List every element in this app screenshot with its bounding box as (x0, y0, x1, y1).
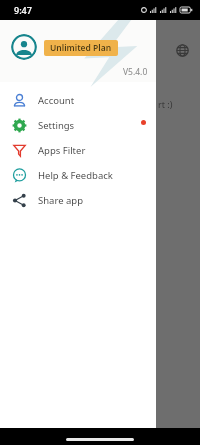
staticText: V5.4.0 (123, 66, 148, 78)
staticText: Unlimited Plan (50, 42, 112, 54)
button[interactable]: Settings (0, 113, 156, 138)
staticText: Apps Filter (38, 144, 86, 157)
staticText: 9:47 (14, 4, 32, 16)
button[interactable]: Account (0, 88, 156, 113)
staticText: Share app (38, 194, 83, 207)
staticText: Help & Feedback (38, 169, 113, 182)
button[interactable]: Apps Filter (0, 138, 156, 163)
button[interactable]: Profile (11, 34, 37, 60)
staticText: Settings (38, 119, 75, 132)
staticText: rt :) (158, 98, 173, 110)
button[interactable]: Language (170, 38, 194, 62)
button[interactable]: Share app (0, 188, 156, 213)
button[interactable]: Unlimited Plan (44, 40, 118, 56)
button[interactable]: Help & Feedback (0, 163, 156, 188)
staticText: Account (38, 94, 75, 107)
